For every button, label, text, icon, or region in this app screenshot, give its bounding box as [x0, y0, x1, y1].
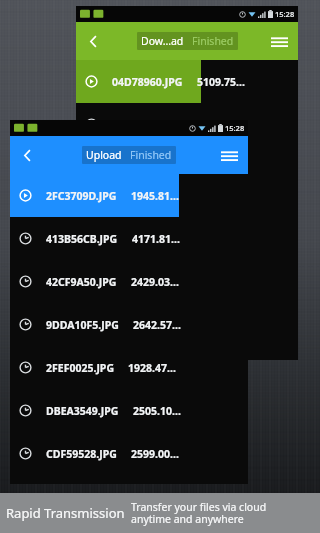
button[interactable]: 0.87 KB [76, 146, 298, 189]
button[interactable]: Upload [82, 146, 126, 164]
staticText: Transfer your files via cloud anytime an… [131, 500, 267, 526]
button[interactable]: Finished [188, 32, 238, 50]
staticText: 2505.10… [133, 404, 181, 418]
staticText: 0.87 KB [126, 161, 164, 175]
staticText: 15:28 [275, 9, 295, 19]
staticText: 2FEF0025.JPG [46, 361, 114, 375]
button[interactable]: Finished [126, 146, 176, 164]
staticText: 2FC3709D.JPG [46, 189, 117, 203]
staticText: 2429.03… [131, 275, 179, 289]
button[interactable]: 300 KB [76, 318, 298, 360]
staticText: 413B56CB.JPG [46, 232, 118, 246]
button[interactable]: 2FC3709D.JPG [10, 174, 248, 217]
button[interactable]: Back [16, 144, 38, 166]
button[interactable]: Menu [217, 143, 241, 167]
staticText: 1945.81… [131, 189, 179, 203]
staticText: 4171.81… [132, 232, 180, 246]
button[interactable]: 04D78960.JPG [76, 60, 298, 103]
button[interactable]: 9DDA10F5.JPG [10, 303, 248, 346]
button[interactable]: Back [82, 30, 104, 52]
staticText: Rapid Transmission [6, 504, 125, 522]
button[interactable]: 413B56CB.JPG [10, 217, 248, 260]
staticText: DBEA3549.JPG [46, 404, 119, 418]
staticText: 1928.47… [128, 361, 176, 375]
staticText: Finished [192, 34, 234, 48]
button[interactable]: Menu [267, 29, 291, 53]
staticText: 2642.57… [133, 318, 181, 332]
staticText: 1.74 KB [126, 204, 164, 218]
button[interactable]: 4.72 KB [76, 232, 298, 275]
button[interactable]: 1.74 KB [76, 189, 298, 232]
button[interactable]: 2.81… [76, 103, 298, 146]
button[interactable]: 2FEF0025.JPG [10, 346, 248, 389]
button[interactable]: DBEA3549.JPG [10, 389, 248, 432]
button[interactable]: 335 KB [76, 275, 298, 318]
button[interactable]: CDF59528.JPG [10, 432, 248, 475]
staticText: Dow…ad [141, 34, 184, 48]
staticText: 9DDA10F5.JPG [46, 318, 119, 332]
staticText: Upload [86, 148, 122, 162]
staticText: 5109.75… [197, 75, 245, 89]
staticText: 2599.00… [131, 447, 179, 461]
button[interactable]: 42CF9A50.JPG [10, 260, 248, 303]
button[interactable]: Dow…ad [137, 32, 188, 50]
staticText: 42CF9A50.JPG [46, 275, 117, 289]
staticText: Finished [130, 148, 172, 162]
staticText: 15:28 [225, 123, 245, 133]
staticText: CDF59528.JPG [46, 447, 117, 461]
staticText: 04D78960.JPG [112, 75, 183, 89]
